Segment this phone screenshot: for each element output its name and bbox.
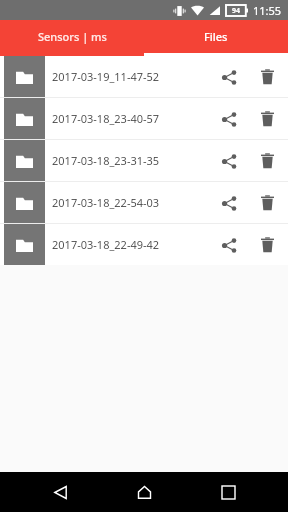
staticText: Files [204, 29, 228, 44]
button[interactable]: Delete [248, 142, 286, 180]
staticText: 2017-03-18_22-54-03 [52, 195, 210, 210]
staticText: 2017-03-18_22-49-42 [52, 237, 210, 252]
button[interactable]: Share [210, 58, 248, 96]
button[interactable]: Back [36, 472, 84, 512]
staticText: 2017-03-18_23-40-57 [52, 111, 210, 126]
button[interactable]: Share [210, 142, 248, 180]
button[interactable]: Share [210, 226, 248, 264]
button[interactable]: 2017-03-18_23-40-57 [0, 98, 288, 139]
staticText: 2017-03-19_11-47-52 [52, 69, 210, 84]
staticText: 94 [232, 6, 241, 16]
button[interactable]: Share [210, 184, 248, 222]
staticText: Sensors | ms [38, 29, 107, 44]
button[interactable]: Home [120, 472, 168, 512]
button[interactable]: Files [144, 20, 288, 53]
button[interactable]: Delete [248, 58, 286, 96]
button[interactable]: Sensors | ms [0, 20, 144, 53]
button[interactable]: Delete [248, 100, 286, 138]
button[interactable]: Share [210, 100, 248, 138]
staticText: 2017-03-18_23-31-35 [52, 153, 210, 168]
button[interactable]: 2017-03-19_11-47-52 [0, 56, 288, 97]
button[interactable]: Delete [248, 226, 286, 264]
button[interactable]: Recents [204, 472, 252, 512]
staticText: 11:55 [253, 3, 282, 18]
button[interactable]: Delete [248, 184, 286, 222]
button[interactable]: 2017-03-18_22-49-42 [0, 224, 288, 265]
button[interactable]: 2017-03-18_22-54-03 [0, 182, 288, 223]
button[interactable]: 2017-03-18_23-31-35 [0, 140, 288, 181]
